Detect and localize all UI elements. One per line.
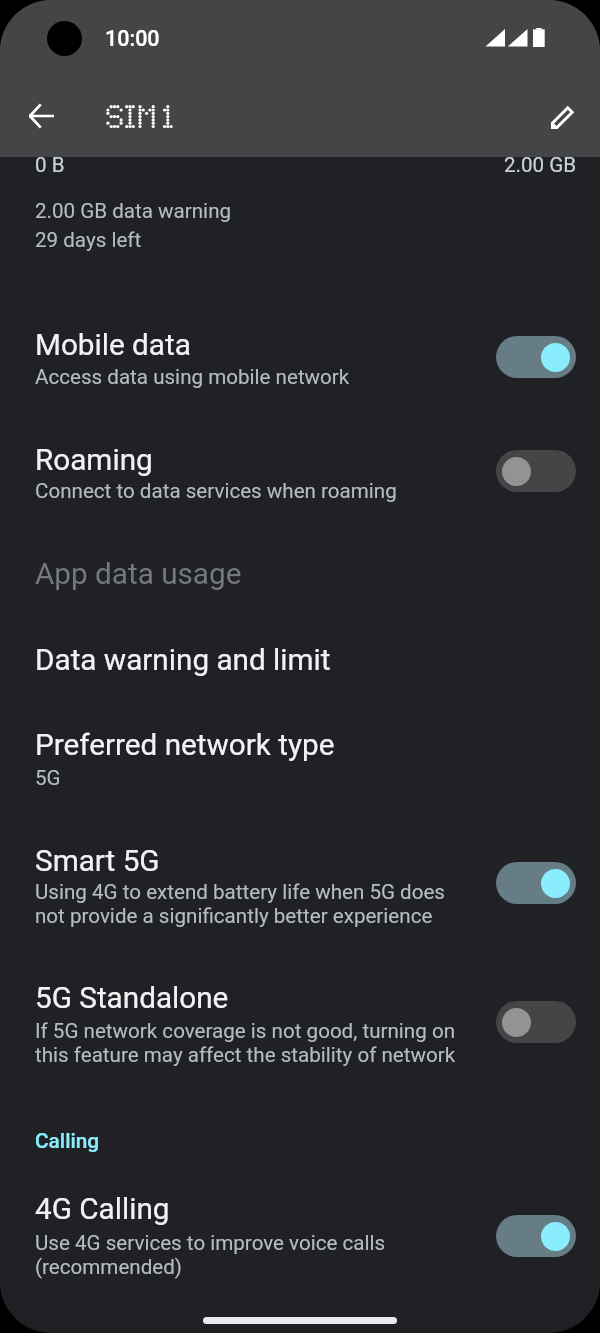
- button[interactable]: Back: [17, 92, 65, 140]
- staticText: Connect to data services when roaming: [35, 479, 397, 503]
- staticText: Data warning and limit: [35, 642, 331, 677]
- button[interactable]: [0, 548, 600, 596]
- staticText: 29 days left: [35, 228, 142, 252]
- staticText: 2.00 GB data warning: [35, 199, 232, 223]
- staticText: 0 B: [35, 153, 65, 177]
- staticText: Calling: [35, 1129, 100, 1153]
- button[interactable]: Edit: [540, 91, 589, 140]
- staticText: Using 4G to extend battery life when 5G …: [35, 880, 470, 928]
- staticText: If 5G network coverage is not good, turn…: [35, 1019, 470, 1067]
- staticText: 5G: [35, 766, 61, 790]
- button[interactable]: [0, 718, 600, 793]
- staticText: Access data using mobile network: [35, 365, 350, 389]
- button[interactable]: [0, 834, 600, 934]
- staticText: Mobile data: [35, 327, 191, 362]
- button[interactable]: Smart 5G: [496, 862, 576, 904]
- staticText: 5G Standalone: [35, 980, 229, 1015]
- staticText: Use 4G services to improve voice calls (…: [35, 1231, 470, 1279]
- button[interactable]: Roaming: [496, 450, 576, 492]
- button[interactable]: Mobile data: [496, 336, 576, 378]
- button[interactable]: [0, 633, 600, 681]
- staticText: App data usage: [35, 556, 242, 591]
- staticText: 10:00: [105, 26, 160, 51]
- button[interactable]: [0, 971, 600, 1071]
- button[interactable]: [0, 430, 600, 510]
- button[interactable]: [0, 315, 600, 395]
- button[interactable]: 4G Calling: [496, 1215, 576, 1257]
- staticText: Preferred network type: [35, 727, 335, 762]
- staticText: 2.00 GB: [504, 153, 577, 177]
- staticText: Roaming: [35, 442, 153, 477]
- staticText: Smart 5G: [35, 843, 160, 878]
- button[interactable]: [0, 1182, 600, 1282]
- staticText: 4G Calling: [35, 1191, 170, 1226]
- button[interactable]: 5G Standalone: [496, 1001, 576, 1043]
